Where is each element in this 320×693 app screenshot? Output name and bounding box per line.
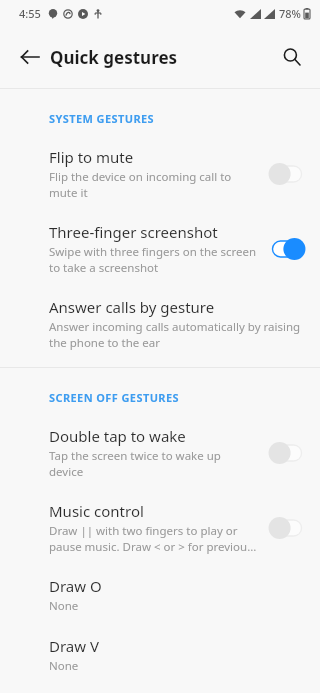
button[interactable]: Double tap to wake xyxy=(0,415,320,490)
staticText: Tap the screen twice to wake up device xyxy=(49,448,258,479)
staticText: Quick gestures xyxy=(50,46,178,69)
button[interactable]: Toggle off xyxy=(268,516,306,540)
button[interactable]: Draw V xyxy=(0,625,320,685)
staticText: Draw || with two fingers to play or paus… xyxy=(49,523,258,554)
staticText: Double tap to wake xyxy=(49,426,186,446)
staticText: None xyxy=(49,658,79,674)
staticText: 4:55 xyxy=(19,6,41,21)
staticText: None xyxy=(49,598,79,614)
staticText: Swipe with three fingers on the screen t… xyxy=(49,244,258,275)
button[interactable]: Toggle off xyxy=(268,162,306,186)
staticText: SCREEN OFF GESTURES xyxy=(49,390,179,405)
button[interactable]: Three-finger screenshot xyxy=(0,211,320,286)
button[interactable]: Flip to mute xyxy=(0,136,320,211)
staticText: Draw V xyxy=(49,636,99,656)
staticText: 78% xyxy=(279,6,301,21)
button[interactable]: Search xyxy=(270,35,314,79)
button[interactable]: Draw O xyxy=(0,565,320,625)
staticText: Answer incoming calls automatically by r… xyxy=(49,319,306,350)
button[interactable]: Music control xyxy=(0,490,320,565)
staticText: SYSTEM GESTURES xyxy=(49,111,155,126)
button[interactable]: Back xyxy=(8,35,52,79)
staticText: Answer calls by gesture xyxy=(49,297,215,317)
button[interactable]: Answer calls by gesture xyxy=(0,286,320,361)
staticText: Draw O xyxy=(49,576,102,596)
staticText: Three-finger screenshot xyxy=(49,222,218,242)
staticText: Music control xyxy=(49,501,144,521)
button[interactable]: Toggle off xyxy=(268,441,306,465)
button[interactable]: Toggle on xyxy=(268,237,306,261)
staticText: Flip to mute xyxy=(49,147,134,167)
staticText: Flip the device on incoming call to mute… xyxy=(49,169,258,200)
